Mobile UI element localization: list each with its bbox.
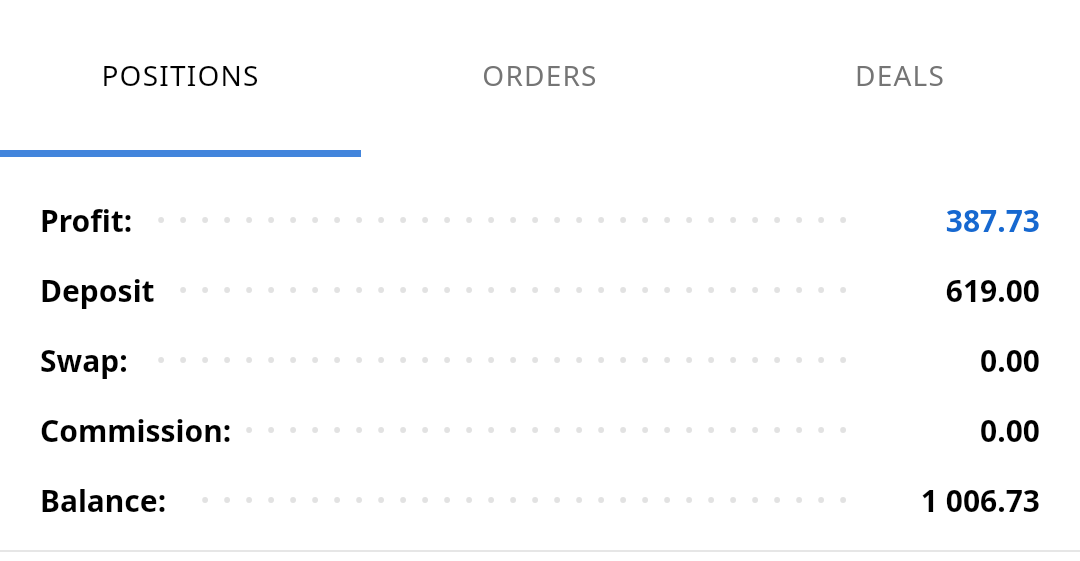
button[interactable]: Commission: [0,395,1080,465]
button[interactable]: Swap: [0,325,1080,395]
staticText: 1 006.73 [920,480,1040,521]
button[interactable]: DEALS [720,0,1080,150]
staticText: DEALS [855,56,945,94]
staticText: 387.73 [945,200,1040,241]
button[interactable]: POSITIONS [0,0,360,150]
staticText: 0.00 [980,340,1040,381]
staticText: Balance: [40,480,167,521]
button[interactable]: ORDERS [360,0,720,150]
staticText: ORDERS [482,56,598,94]
staticText: Commission: [40,410,232,451]
staticText: POSITIONS [101,56,260,94]
button[interactable]: Profit: [0,185,1080,255]
staticText: Deposit [40,270,155,311]
button[interactable]: Balance: [0,465,1080,535]
staticText: Profit: [40,200,133,241]
button[interactable]: Deposit [0,255,1080,325]
staticText: Swap: [40,340,128,381]
staticText: 619.00 [945,270,1040,311]
staticText: 0.00 [980,410,1040,451]
